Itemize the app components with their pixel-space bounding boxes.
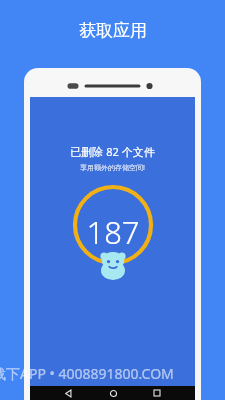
staticText: 187 [86, 211, 140, 253]
button[interactable]: Recent apps [150, 386, 164, 400]
button[interactable]: Home [106, 386, 120, 400]
staticText: 享用额外的存储空间! [80, 163, 145, 173]
button[interactable]: Back [61, 386, 75, 400]
staticText: 载下APP • 4008891800.COM [0, 364, 174, 383]
staticText: 获取应用 [79, 20, 147, 41]
staticText: 已删除 82 个文件 [70, 144, 155, 159]
staticText: 兆字节 [104, 253, 122, 261]
